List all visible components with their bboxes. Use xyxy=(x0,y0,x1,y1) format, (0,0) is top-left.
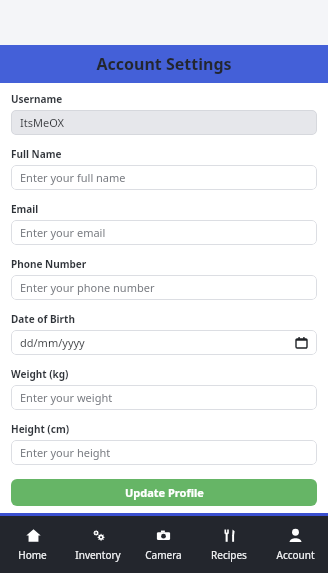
staticText: dd/mm/yyyy xyxy=(20,335,295,350)
button[interactable]: Enter your weight xyxy=(11,385,317,410)
staticText: Account Settings xyxy=(96,53,232,75)
staticText: Inventory xyxy=(75,548,121,562)
button[interactable]: Camera xyxy=(130,516,196,573)
staticText: Enter your full name xyxy=(20,170,126,185)
staticText: Username xyxy=(11,92,63,106)
button[interactable]: Enter your full name xyxy=(11,165,317,190)
staticText: Email xyxy=(11,202,39,216)
other: Recipes xyxy=(222,528,237,543)
staticText: ItsMeOX xyxy=(20,115,64,130)
staticText: Height (cm) xyxy=(11,422,70,436)
staticText: Recipes xyxy=(211,548,247,562)
staticText: Update Profile xyxy=(125,485,204,500)
other: Account xyxy=(288,528,303,543)
button[interactable]: Enter your email xyxy=(11,220,317,245)
button[interactable]: Inventory xyxy=(65,516,130,573)
button[interactable]: Account xyxy=(262,516,328,573)
other: Inventory xyxy=(91,528,106,543)
button[interactable]: Recipes xyxy=(196,516,262,573)
staticText: Account xyxy=(276,548,315,562)
button[interactable]: Home xyxy=(0,516,65,573)
staticText: Camera xyxy=(145,548,182,562)
staticText: Enter your email xyxy=(20,225,106,240)
button[interactable]: Enter your phone number xyxy=(11,275,317,300)
button[interactable]: dd/mm/yyyy xyxy=(11,330,317,355)
staticText: Weight (kg) xyxy=(11,367,69,381)
staticText: Phone Number xyxy=(11,257,87,271)
button[interactable]: Update Profile xyxy=(11,479,317,506)
button[interactable]: Pick date xyxy=(295,336,308,349)
staticText: Full Name xyxy=(11,147,62,161)
button[interactable]: Enter your height xyxy=(11,440,317,465)
button[interactable]: ItsMeOX xyxy=(11,110,317,135)
staticText: Enter your phone number xyxy=(20,280,155,295)
other: Camera xyxy=(156,528,171,543)
staticText: Enter your weight xyxy=(20,390,113,405)
staticText: Home xyxy=(18,548,47,562)
staticText: Enter your height xyxy=(20,445,111,460)
staticText: Date of Birth xyxy=(11,312,75,326)
other: Home xyxy=(26,528,41,543)
